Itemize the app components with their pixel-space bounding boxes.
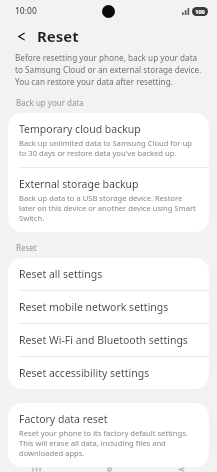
button[interactable]: Back	[145, 467, 217, 472]
button[interactable]: External storage backup	[8, 168, 209, 232]
staticText: 100	[195, 8, 205, 16]
button[interactable]: Reset all settings	[8, 258, 209, 290]
staticText: Reset all settings	[19, 267, 103, 281]
button[interactable]: Reset mobile network settings	[8, 291, 209, 323]
staticText: Back up data to a USB storage device. Re…	[19, 193, 198, 223]
staticText: Before resetting your phone, back up you…	[15, 52, 204, 87]
staticText: Back up your data	[16, 97, 84, 108]
staticText: Back up unlimited data to Samsung Cloud …	[19, 138, 198, 158]
button[interactable]: Reset Wi-Fi and Bluetooth settings	[8, 324, 209, 356]
button[interactable]: Back	[13, 28, 29, 44]
staticText: Reset accessibility settings	[19, 366, 150, 380]
button[interactable]: Home	[73, 467, 145, 472]
staticText: Reset your phone to its factory default …	[19, 428, 198, 458]
staticText: Reset	[16, 242, 37, 253]
button[interactable]: Factory data reset	[8, 403, 209, 467]
staticText: Reset Wi-Fi and Bluetooth settings	[19, 333, 188, 347]
button[interactable]: Temporary cloud backup	[8, 113, 209, 167]
staticText: Reset mobile network settings	[19, 300, 169, 314]
staticText: External storage backup	[19, 177, 139, 191]
staticText: Reset	[37, 26, 79, 46]
button[interactable]: Reset accessibility settings	[8, 357, 209, 389]
button[interactable]: Recent apps	[0, 467, 73, 472]
staticText: Factory data reset	[19, 412, 108, 426]
staticText: 10:00	[15, 5, 37, 17]
staticText: Temporary cloud backup	[19, 122, 141, 136]
